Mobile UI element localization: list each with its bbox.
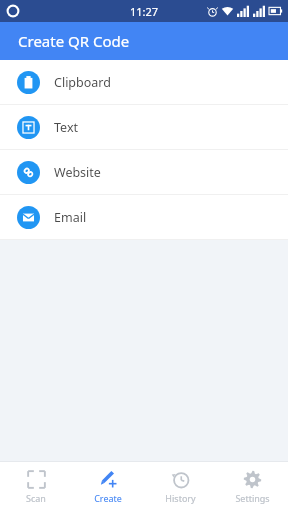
button[interactable]: Clipboard (0, 60, 288, 104)
button[interactable]: Create (72, 462, 144, 512)
button[interactable]: Website (0, 150, 288, 194)
button[interactable]: Text (0, 105, 288, 149)
staticText: History (165, 492, 196, 504)
button[interactable]: Scan (0, 462, 72, 512)
button[interactable]: Email (0, 195, 288, 239)
staticText: Email (54, 209, 87, 226)
staticText: Settings (235, 492, 270, 504)
staticText: Text (54, 119, 79, 136)
staticText: 11:27 (130, 4, 159, 19)
staticText: Create (94, 492, 122, 504)
staticText: Website (54, 164, 101, 181)
button[interactable]: Settings (216, 462, 288, 512)
staticText: Create QR Code (18, 31, 130, 51)
staticText: Scan (26, 492, 46, 504)
staticText: Clipboard (54, 74, 111, 91)
button[interactable]: History (144, 462, 216, 512)
